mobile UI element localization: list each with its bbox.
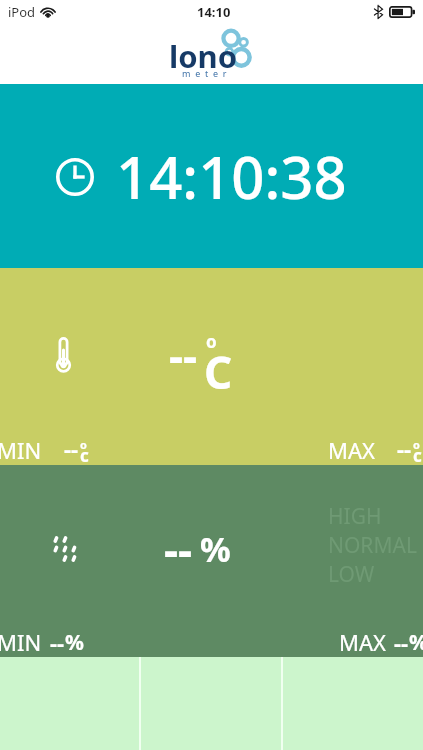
staticText: o: [80, 437, 87, 452]
button[interactable]: Humidity: [0, 465, 423, 657]
staticText: MIN: [0, 627, 42, 657]
staticText: LOW: [328, 560, 375, 589]
staticText: %: [409, 628, 423, 657]
staticText: --: [397, 433, 412, 463]
staticText: NORMAL: [328, 531, 417, 560]
staticText: %: [200, 526, 231, 572]
staticText: 14:10:38: [116, 137, 347, 216]
button[interactable]: MIN: [0, 435, 211, 465]
button[interactable]: MIN: [0, 627, 211, 657]
staticText: MIN: [0, 435, 42, 465]
button[interactable]: Clock: [0, 84, 423, 268]
staticText: --: [50, 627, 65, 657]
staticText: --: [169, 325, 198, 385]
staticText: lono: [169, 35, 238, 77]
staticText: --: [164, 519, 193, 579]
staticText: c: [413, 444, 422, 467]
staticText: %: [65, 628, 84, 657]
staticText: o: [206, 330, 217, 353]
staticText: 14:10: [197, 3, 231, 21]
staticText: MAX: [339, 627, 386, 657]
other: Humidity: [48, 532, 84, 566]
button[interactable]: MAX: [211, 627, 423, 657]
button[interactable]: Temperature: [0, 268, 423, 465]
other: Temperature: [54, 337, 73, 373]
staticText: MAX: [328, 435, 375, 465]
staticText: iPod: [8, 3, 36, 21]
staticText: --: [394, 627, 409, 657]
staticText: c: [80, 444, 89, 467]
staticText: C: [204, 342, 233, 394]
other: Clock: [56, 158, 94, 196]
staticText: --: [64, 433, 79, 463]
staticText: HIGH: [328, 502, 382, 531]
button[interactable]: MAX: [211, 435, 423, 465]
staticText: m e t e r: [182, 67, 228, 79]
staticText: o: [413, 437, 420, 452]
